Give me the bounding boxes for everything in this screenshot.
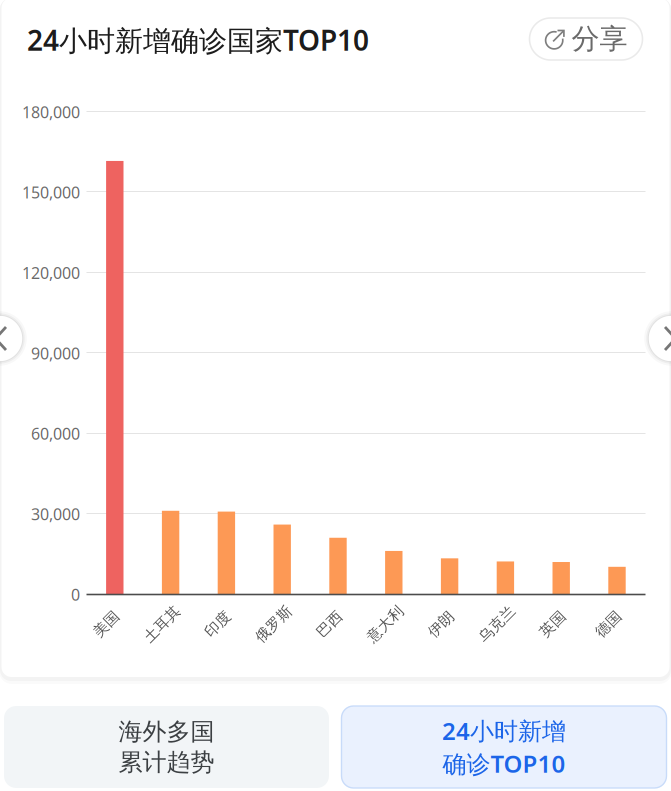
staticText: 30,000 [31, 503, 80, 525]
staticText: 海外多国 [118, 717, 214, 746]
staticText: 150,000 [22, 182, 80, 203]
staticText: 60,000 [31, 423, 80, 444]
staticText: 土耳其 [140, 615, 185, 633]
staticText: 意大利 [363, 615, 408, 633]
button[interactable]: Previous chart [0, 311, 27, 366]
staticText: 印度 [203, 615, 233, 633]
staticText: 分享 [571, 22, 627, 56]
staticText: 120,000 [22, 262, 80, 283]
staticText: 巴西 [314, 615, 344, 633]
staticText: 90,000 [31, 343, 80, 364]
staticText: 0 [71, 584, 80, 605]
staticText: 俄罗斯 [251, 615, 296, 633]
button[interactable]: Next chart [644, 311, 671, 366]
staticText: 伊朗 [426, 615, 456, 633]
staticText: 乌克兰 [474, 615, 519, 633]
staticText: 180,000 [22, 101, 80, 123]
button[interactable]: 海外多国 [4, 706, 329, 788]
staticText: 美国 [91, 615, 121, 633]
staticText: 德国 [593, 615, 623, 633]
staticText: 英国 [538, 615, 568, 633]
button[interactable]: 24小时新增 [341, 706, 666, 788]
staticText: 累计趋势 [118, 747, 214, 777]
button[interactable]: 分享 [529, 18, 642, 60]
staticText: 24小时新增确诊国家TOP10 [27, 21, 369, 59]
staticText: 24小时新增 [442, 715, 566, 746]
staticText: 确诊TOP10 [442, 747, 565, 779]
